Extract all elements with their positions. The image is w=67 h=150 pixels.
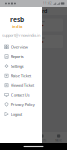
staticText: Privacy Policy — [11, 102, 35, 107]
staticText: Contact Us — [11, 92, 30, 97]
button[interactable]: Alerts — [33, 132, 50, 143]
staticText: Dashboard — [20, 7, 47, 15]
button[interactable]: Settings — [0, 61, 42, 71]
staticText: More — [55, 139, 62, 142]
button[interactable]: Logout — [0, 109, 42, 119]
button[interactable]: Contact Us — [0, 90, 42, 100]
staticText: Viewed Ticket — [11, 83, 34, 88]
button[interactable]: Viewed Ticket — [0, 80, 42, 90]
staticText: Raise Ticket — [11, 73, 31, 78]
staticText: Reports — [11, 54, 24, 59]
staticText: support@rnowindia.in — [2, 33, 40, 38]
staticText: india — [12, 24, 22, 29]
button[interactable]: More — [50, 132, 67, 143]
staticText: resb — [10, 15, 24, 24]
button[interactable]: Privacy Policy — [0, 100, 42, 109]
staticText: Settings — [11, 63, 24, 69]
button[interactable]: Reports — [0, 52, 42, 61]
staticText: Logout — [11, 111, 22, 117]
staticText: 11:42 — [43, 2, 52, 5]
staticText: Overview — [11, 44, 28, 49]
button[interactable]: Raise Ticket — [0, 71, 42, 80]
staticText: Alerts — [38, 139, 46, 142]
button[interactable]: Overview — [0, 42, 42, 52]
